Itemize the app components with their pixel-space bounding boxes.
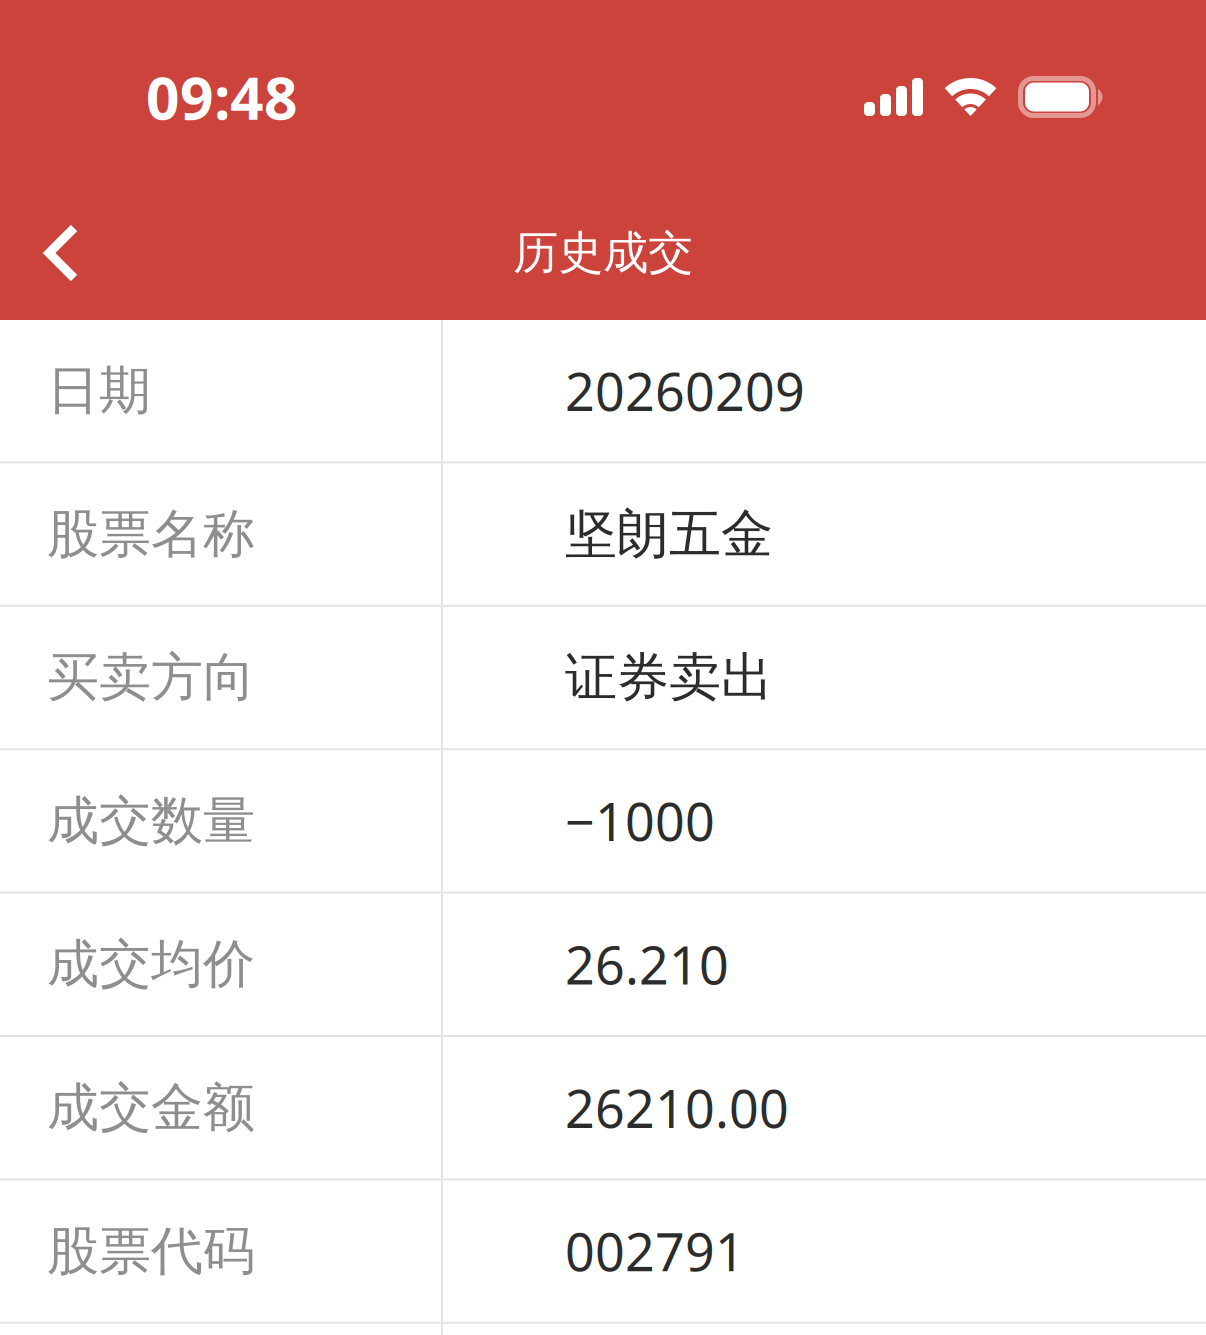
staticText: 20260209: [565, 356, 805, 425]
staticText: 坚朗五金: [565, 502, 773, 566]
staticText: 成交均价: [47, 932, 255, 996]
staticText: 002791: [565, 1217, 745, 1286]
staticText: 成交金额: [47, 1076, 255, 1140]
staticText: 26210.00: [565, 1073, 789, 1142]
staticText: −1000: [565, 786, 715, 855]
staticText: 日期: [47, 359, 151, 423]
staticText: 证券卖出: [565, 646, 773, 709]
staticText: 历史成交: [513, 225, 693, 281]
staticText: 股票代码: [47, 1219, 255, 1283]
staticText: 股票名称: [47, 502, 255, 566]
button[interactable]: Back: [0, 193, 120, 313]
staticText: 26.210: [565, 930, 729, 999]
staticText: 成交数量: [47, 789, 255, 853]
staticText: 09:48: [146, 58, 298, 136]
staticText: 买卖方向: [47, 646, 255, 709]
